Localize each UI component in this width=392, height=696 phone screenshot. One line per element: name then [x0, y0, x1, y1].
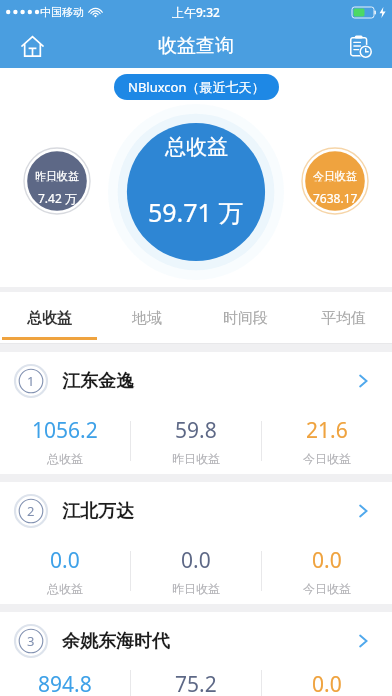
- staticText: 余姚东海时代: [62, 630, 348, 653]
- button[interactable]: 总收益: [0, 292, 98, 344]
- button[interactable]: 今日收益: [301, 147, 369, 215]
- button[interactable]: 地域: [98, 292, 196, 344]
- other: Open 余姚东海时代: [348, 626, 378, 656]
- staticText: 0.0: [312, 670, 342, 696]
- staticText: 21.6: [306, 416, 348, 445]
- button[interactable]: 昨日收益: [23, 147, 91, 215]
- button[interactable]: NBluxcon（最近七天）: [114, 74, 279, 100]
- staticText: 今日收益: [303, 581, 351, 596]
- staticText: 7638.17: [313, 190, 358, 206]
- staticText: 59.8: [175, 416, 217, 445]
- staticText: 总收益: [27, 309, 72, 328]
- staticText: 59.71 万: [148, 195, 244, 229]
- other: Open 江东金逸: [348, 366, 378, 396]
- button[interactable]: 3: [0, 612, 392, 696]
- staticText: NBluxcon（最近七天）: [128, 78, 265, 96]
- staticText: 75.2: [175, 670, 217, 696]
- staticText: 昨日收益: [172, 581, 220, 596]
- staticText: 上午9:32: [172, 4, 220, 20]
- other: Open 江北万达: [348, 496, 378, 526]
- staticText: 2: [27, 502, 35, 520]
- button[interactable]: 1: [0, 352, 392, 474]
- staticText: 0.0: [312, 546, 342, 575]
- staticText: 江东金逸: [62, 370, 348, 393]
- button[interactable]: History: [338, 24, 382, 68]
- staticText: 平均值: [321, 309, 366, 328]
- staticText: 收益查询: [158, 34, 234, 58]
- staticText: 江北万达: [62, 500, 348, 523]
- staticText: 894.8: [38, 670, 92, 696]
- button[interactable]: 时间段: [196, 292, 294, 344]
- staticText: 3: [27, 632, 35, 650]
- staticText: 时间段: [223, 309, 268, 328]
- staticText: 7.42 万: [38, 190, 77, 206]
- staticText: 昨日收益: [172, 451, 220, 466]
- button[interactable]: 平均值: [294, 292, 392, 344]
- staticText: 中国移动: [40, 5, 84, 19]
- staticText: 昨日收益: [35, 169, 79, 183]
- staticText: 1056.2: [32, 416, 98, 445]
- staticText: 今日收益: [303, 451, 351, 466]
- staticText: 总收益: [47, 581, 83, 596]
- button[interactable]: Home: [10, 24, 54, 68]
- button[interactable]: 2: [0, 482, 392, 604]
- staticText: 1: [27, 372, 35, 390]
- staticText: 地域: [132, 309, 162, 328]
- staticText: 总收益: [165, 134, 228, 160]
- staticText: 0.0: [50, 546, 80, 575]
- staticText: 今日收益: [313, 169, 357, 183]
- staticText: 总收益: [47, 451, 83, 466]
- staticText: 0.0: [181, 546, 211, 575]
